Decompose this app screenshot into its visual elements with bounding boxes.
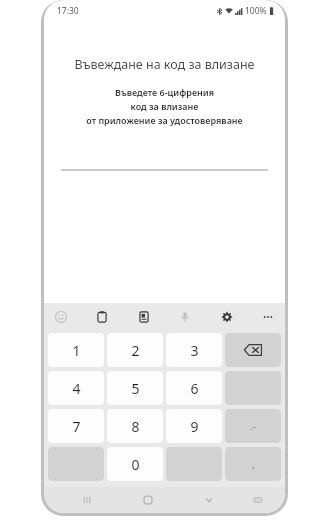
button[interactable]: Recent apps: [75, 488, 99, 512]
button[interactable]: 0: [107, 447, 163, 481]
button[interactable]: Emoji: [50, 306, 72, 328]
button[interactable]: Stickers: [133, 306, 155, 328]
staticText: 5: [131, 379, 140, 398]
staticText: 4: [72, 379, 81, 398]
staticText: 9: [190, 417, 199, 436]
button[interactable]: 5: [107, 371, 163, 405]
staticText: ,: [252, 458, 255, 470]
staticText: от приложение за удостоверяване: [44, 114, 285, 126]
button[interactable]: Backspace: [225, 333, 281, 367]
staticText: 17:30: [57, 5, 79, 17]
button[interactable]: 3: [166, 333, 222, 367]
button[interactable]: 2: [107, 333, 163, 367]
button[interactable]: 7: [48, 409, 104, 443]
staticText: 2: [131, 341, 140, 360]
staticText: Въведете 6-цифрения: [44, 86, 285, 98]
button[interactable]: Clipboard: [91, 306, 113, 328]
staticText: 0: [131, 455, 140, 474]
button[interactable]: More options: [257, 306, 279, 328]
button[interactable]: Keyboard: [246, 488, 270, 512]
button[interactable]: .-: [225, 409, 281, 443]
staticText: 1: [72, 341, 81, 360]
staticText: 8: [131, 417, 140, 436]
staticText: 100%: [245, 5, 267, 17]
staticText: 6: [190, 379, 199, 398]
staticText: 3: [190, 341, 199, 360]
button[interactable]: 4: [48, 371, 104, 405]
staticText: код за влизане: [44, 100, 285, 112]
button[interactable]: 6: [166, 371, 222, 405]
staticText: Въвеждане на код за влизане: [52, 56, 277, 73]
button[interactable]: Keyboard settings: [216, 306, 238, 328]
button[interactable]: Hide keyboard: [197, 488, 221, 512]
staticText: 7: [72, 417, 81, 436]
staticText: .-: [250, 420, 256, 432]
button[interactable]: Home: [136, 488, 160, 512]
button[interactable]: [61, 153, 268, 171]
button[interactable]: 9: [166, 409, 222, 443]
button[interactable]: 8: [107, 409, 163, 443]
button[interactable]: 1: [48, 333, 104, 367]
button[interactable]: Voice input: [174, 306, 196, 328]
